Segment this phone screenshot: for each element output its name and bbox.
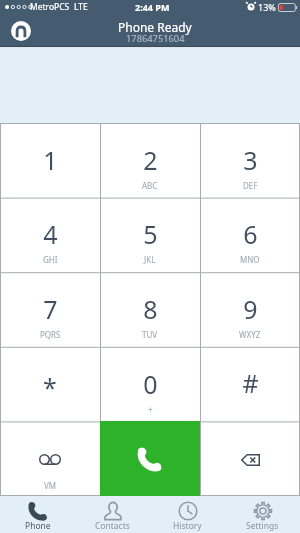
button[interactable]: History (150, 496, 225, 533)
button[interactable]: 4 (0, 197, 100, 271)
staticText: 3 (243, 143, 258, 177)
staticText: 5 (143, 217, 158, 251)
staticText: DEF (243, 180, 258, 191)
staticText: + (148, 404, 153, 415)
button[interactable]: Call (100, 421, 200, 496)
staticText: 1 (43, 143, 58, 177)
button[interactable]: 8 (100, 271, 200, 346)
button[interactable]: # (200, 346, 300, 421)
button[interactable]: 3 (200, 123, 300, 197)
staticText: MNO (240, 254, 260, 265)
button[interactable]: 0 (100, 346, 200, 421)
button[interactable]: Voicemail (0, 421, 100, 496)
staticText: VM (44, 480, 57, 491)
staticText: PQRS (40, 329, 61, 340)
button[interactable]: 6 (200, 197, 300, 271)
staticText: Settings (246, 520, 279, 532)
button[interactable]: Backspace (200, 421, 300, 496)
staticText: 8 (143, 292, 158, 326)
staticText: 17864751604 (126, 32, 185, 45)
staticText: WXYZ (239, 329, 261, 340)
button[interactable]: 9 (200, 271, 300, 346)
staticText: 9 (243, 292, 258, 326)
staticText: 0 (143, 367, 158, 401)
staticText: MetroPCS (30, 1, 70, 13)
staticText: History (173, 520, 202, 532)
button[interactable]: 5 (100, 197, 200, 271)
staticText: # (242, 366, 259, 400)
button[interactable]: 2 (100, 123, 200, 197)
button[interactable]: 1 (0, 123, 100, 197)
staticText: 2:44 PM (135, 1, 170, 13)
staticText: JKL (144, 254, 156, 265)
button[interactable]: Settings (225, 496, 300, 533)
staticText: ABC (142, 180, 158, 191)
staticText: 13% (258, 1, 276, 13)
button[interactable]: 7 (0, 271, 100, 346)
staticText: Phone Ready (118, 19, 192, 35)
button[interactable]: * (0, 346, 100, 421)
staticText: GHI (43, 254, 58, 265)
staticText: 7 (43, 292, 58, 326)
staticText: Contacts (95, 520, 130, 532)
staticText: Phone (25, 520, 51, 532)
staticText: TUV (142, 329, 158, 340)
button[interactable]: Contacts (75, 496, 150, 533)
staticText: 2 (143, 143, 158, 177)
staticText: 6 (243, 217, 258, 251)
staticText: * (43, 370, 57, 404)
button[interactable]: App logo (11, 21, 31, 41)
staticText: 4 (43, 217, 58, 251)
button[interactable]: Phone (0, 496, 75, 533)
staticText: LTE (74, 1, 88, 13)
